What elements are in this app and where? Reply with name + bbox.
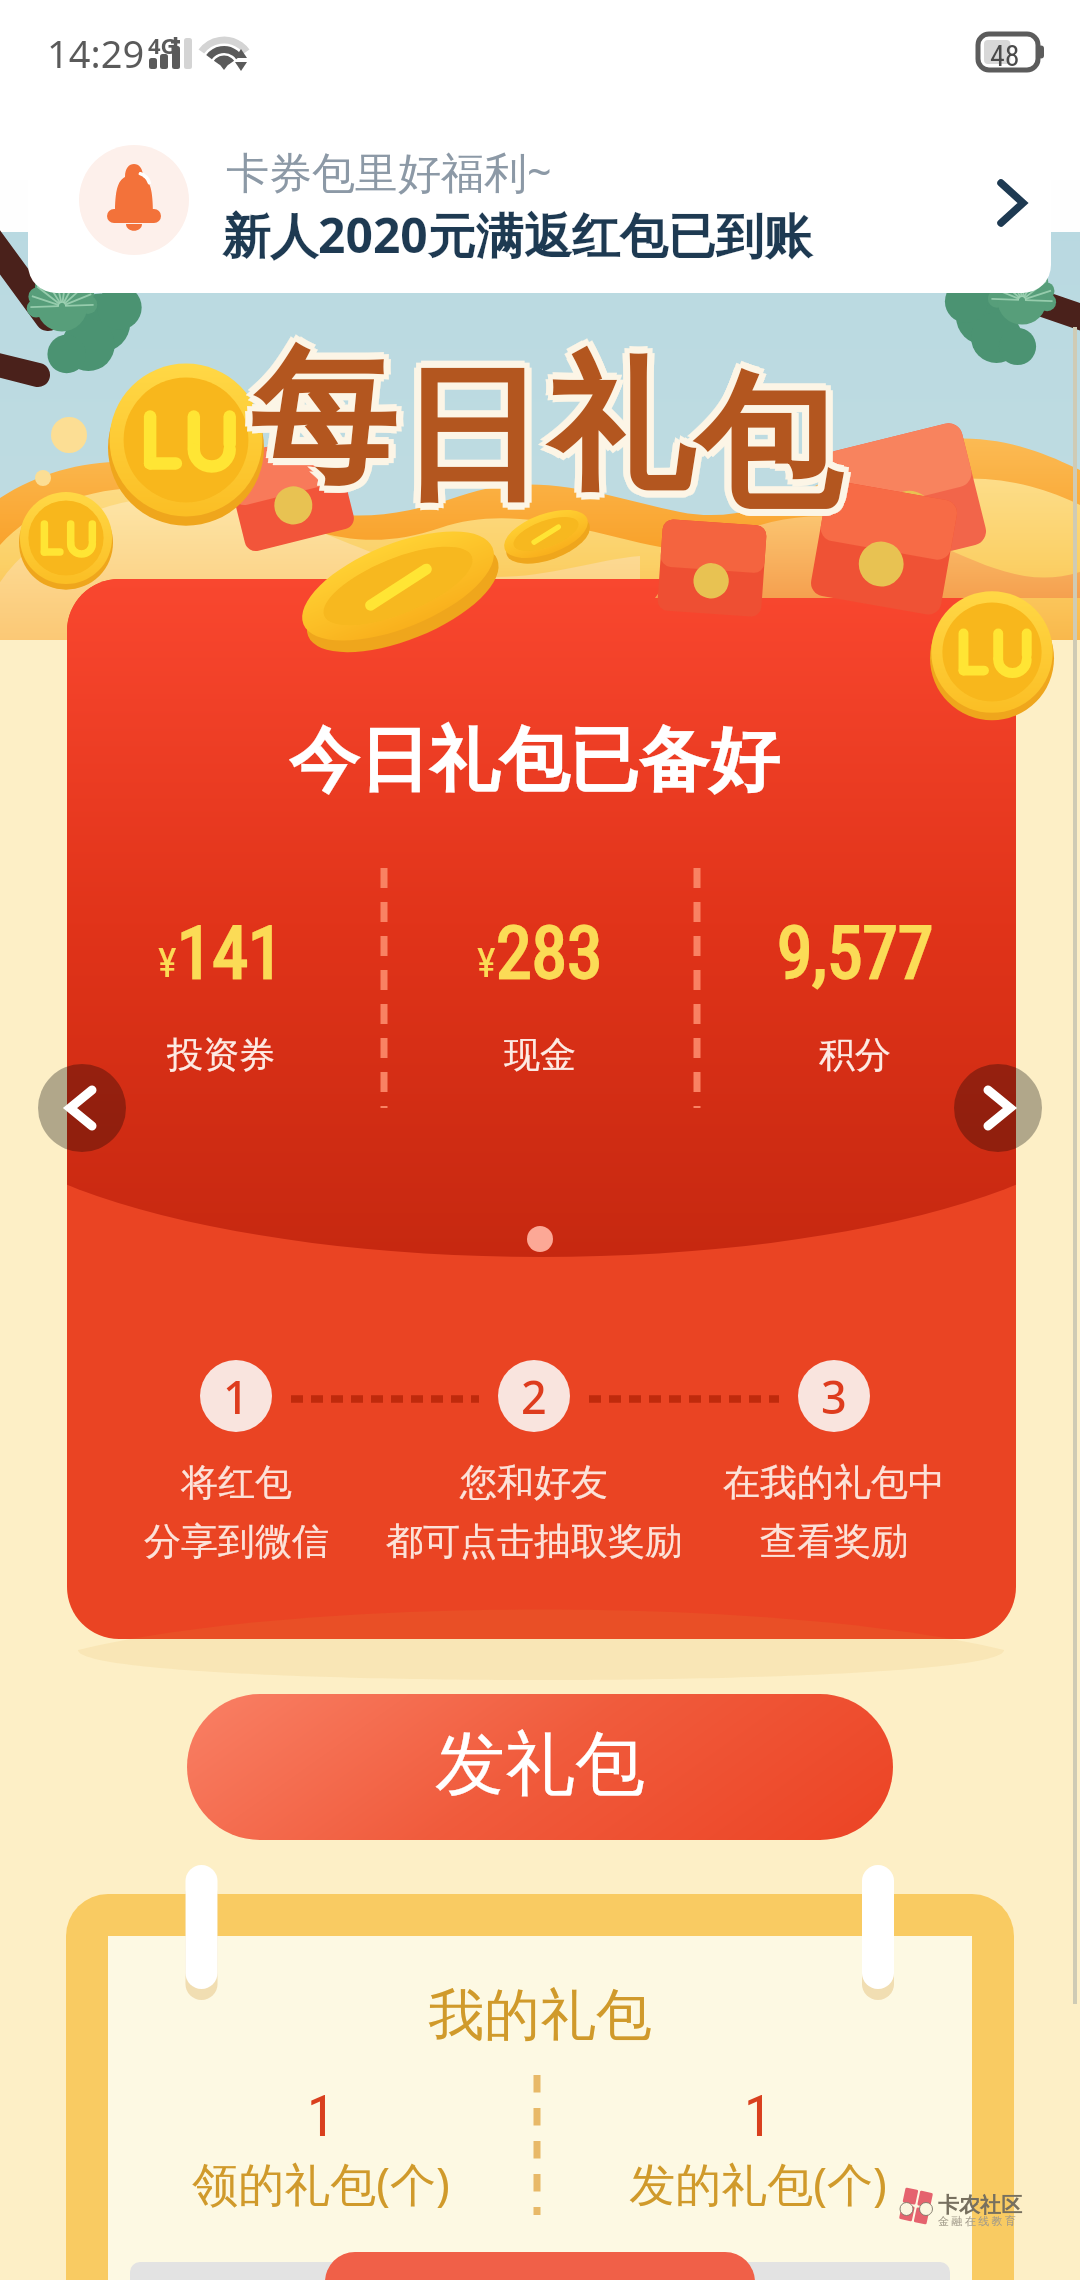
- staticText: 每: [255, 321, 401, 505]
- staticText: 141: [177, 911, 284, 995]
- staticText: 发的礼包(个): [558, 2152, 958, 2215]
- staticText: 9,577: [777, 911, 934, 995]
- staticText: 卡农社区: [938, 2192, 1022, 2218]
- staticText: 在我的礼包中: [723, 1459, 945, 1506]
- staticText: 将红包: [181, 1459, 292, 1506]
- staticText: 283: [496, 911, 603, 995]
- staticText: 日: [398, 351, 544, 535]
- staticText: 投资券: [41, 1032, 401, 1077]
- staticText: 礼: [541, 329, 687, 513]
- staticText: 每: [243, 326, 389, 510]
- staticText: 积分: [675, 1032, 1035, 1077]
- staticText: 礼: [539, 334, 685, 518]
- staticText: 每: [250, 333, 396, 517]
- staticText: 新人2020元满返红包已到账: [222, 202, 812, 268]
- staticText: 都可点击抽取奖励: [386, 1518, 682, 1565]
- staticText: 包: [687, 352, 833, 536]
- staticText: 包: [689, 347, 835, 531]
- staticText: 包: [694, 345, 840, 529]
- staticText: 1: [558, 2082, 958, 2150]
- staticText: 礼: [541, 339, 687, 523]
- staticText: 每: [250, 326, 396, 510]
- staticText: 礼: [546, 327, 692, 511]
- staticText: 日: [393, 339, 539, 523]
- staticText: 礼: [551, 329, 697, 513]
- staticText: 今日礼包已备好: [289, 717, 779, 805]
- staticText: 我的礼包: [0, 1980, 1080, 2051]
- staticText: 包: [689, 357, 835, 541]
- staticText: 礼: [551, 339, 697, 523]
- staticText: ¥: [158, 940, 177, 987]
- button[interactable]: Next: [954, 1064, 1042, 1152]
- staticText: 领的礼包(个): [121, 2152, 521, 2215]
- staticText: 分享到微信: [144, 1518, 329, 1565]
- staticText: 包: [701, 352, 847, 536]
- staticText: 日: [398, 344, 544, 528]
- staticText: 日: [398, 337, 544, 521]
- staticText: 3: [821, 1366, 847, 1427]
- staticText: 日: [391, 344, 537, 528]
- staticText: 发礼包: [435, 1721, 645, 1809]
- staticText: 日: [403, 339, 549, 523]
- staticText: 您和好友: [460, 1459, 608, 1506]
- button[interactable]: 卡券包里好福利~: [28, 104, 1051, 293]
- staticText: 卡券包里好福利~: [226, 142, 552, 201]
- staticText: 每: [245, 331, 391, 515]
- staticText: 每: [250, 319, 396, 503]
- staticText: 1: [223, 1366, 249, 1427]
- staticText: ¥: [477, 940, 496, 987]
- staticText: 金融在线教育: [938, 2214, 1019, 2228]
- staticText: 包: [699, 357, 845, 541]
- staticText: 礼: [546, 334, 692, 518]
- staticText: 每: [255, 331, 401, 515]
- staticText: 日: [403, 349, 549, 533]
- staticText: 查看奖励: [760, 1518, 908, 1565]
- staticText: 礼: [553, 334, 699, 518]
- staticText: 4G: [148, 30, 177, 60]
- staticText: 包: [694, 359, 840, 543]
- staticText: 礼: [546, 341, 692, 525]
- staticText: 包: [694, 352, 840, 536]
- staticText: 包: [699, 347, 845, 531]
- button[interactable]: Open offer: [958, 150, 1051, 246]
- staticText: 2: [521, 1366, 547, 1427]
- button[interactable]: Previous: [38, 1064, 126, 1152]
- staticText: 每: [245, 321, 391, 505]
- staticText: 每: [257, 326, 403, 510]
- staticText: 1: [121, 2082, 521, 2150]
- staticText: 日: [393, 349, 539, 533]
- staticText: 现金: [360, 1032, 720, 1077]
- staticText: 48: [990, 38, 1020, 73]
- staticText: 14:29: [47, 27, 145, 79]
- staticText: 日: [405, 344, 551, 528]
- button[interactable]: 发礼包: [187, 1694, 893, 1840]
